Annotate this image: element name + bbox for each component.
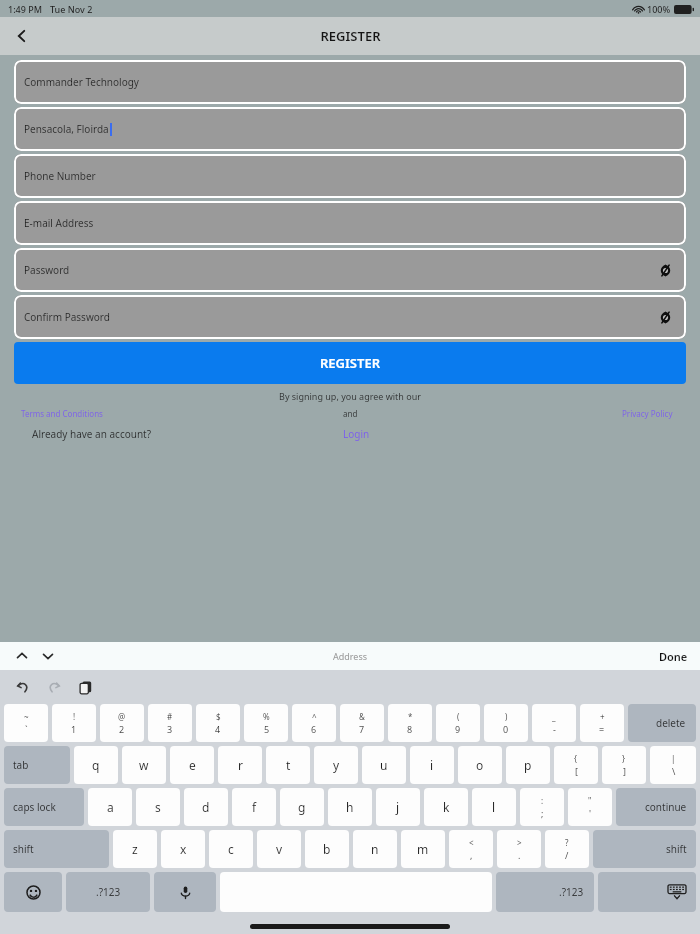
button[interactable]: Login [343, 427, 370, 441]
button[interactable]: p [506, 746, 550, 784]
button[interactable]: continue [616, 788, 696, 826]
button[interactable]: Terms and Conditions [21, 408, 103, 419]
button[interactable]: ^ [292, 704, 336, 742]
button[interactable]: Password [14, 248, 686, 292]
button[interactable]: Previous field [10, 644, 34, 668]
staticText: E-mail Address [24, 216, 94, 230]
button[interactable]: " [568, 788, 612, 826]
button[interactable]: > [497, 830, 541, 868]
button[interactable]: * [388, 704, 432, 742]
staticText: v [276, 841, 283, 857]
button[interactable]: t [266, 746, 310, 784]
button[interactable]: w [122, 746, 166, 784]
button[interactable]: o [458, 746, 502, 784]
staticText: / [565, 849, 569, 861]
button[interactable]: s [136, 788, 180, 826]
button[interactable]: Back [0, 17, 44, 55]
button[interactable]: Hide keyboard [598, 872, 696, 912]
button[interactable]: y [314, 746, 358, 784]
staticText: k [443, 799, 450, 815]
button[interactable]: ! [52, 704, 96, 742]
button[interactable]: _ [532, 704, 576, 742]
button[interactable]: ~ [4, 704, 48, 742]
staticText: @ [118, 711, 126, 722]
button[interactable]: Confirm Password [14, 295, 686, 339]
button[interactable]: shift [4, 830, 109, 868]
button[interactable]: Paste [72, 674, 98, 700]
button[interactable]: ) [484, 704, 528, 742]
button[interactable]: % [244, 704, 288, 742]
button[interactable]: Dictation [154, 872, 216, 912]
button[interactable]: : [520, 788, 564, 826]
staticText: " [588, 795, 592, 806]
button[interactable]: ( [436, 704, 480, 742]
button[interactable]: g [280, 788, 324, 826]
button[interactable]: { [554, 746, 598, 784]
button[interactable]: Redo [41, 674, 67, 700]
button[interactable]: + [580, 704, 624, 742]
button[interactable]: x [161, 830, 205, 868]
staticText: ] [623, 765, 626, 777]
button[interactable]: m [401, 830, 445, 868]
button[interactable]: i [410, 746, 454, 784]
button[interactable]: ? [545, 830, 589, 868]
button[interactable]: h [328, 788, 372, 826]
button[interactable]: Privacy Policy [622, 408, 673, 419]
button[interactable]: .?123 [496, 872, 594, 912]
button[interactable]: n [353, 830, 397, 868]
button[interactable]: tab [4, 746, 70, 784]
button[interactable]: shift [593, 830, 696, 868]
button[interactable]: v [257, 830, 301, 868]
button[interactable]: u [362, 746, 406, 784]
button[interactable]: | [650, 746, 696, 784]
button[interactable]: } [602, 746, 646, 784]
button[interactable]: < [449, 830, 493, 868]
button[interactable]: Toggle password visibility [652, 257, 678, 283]
staticText: Pensacola, Floirda [24, 122, 109, 136]
button[interactable]: z [113, 830, 157, 868]
button[interactable]: Pensacola, Floirda [14, 107, 686, 151]
button[interactable]: Next field [36, 644, 60, 668]
button[interactable]: c [209, 830, 253, 868]
button[interactable]: b [305, 830, 349, 868]
staticText: c [228, 841, 234, 857]
button[interactable]: q [74, 746, 118, 784]
button[interactable]: Done [659, 649, 688, 664]
button[interactable]: a [88, 788, 132, 826]
staticText: a [107, 799, 114, 815]
staticText: 3 [167, 723, 173, 735]
button[interactable]: d [184, 788, 228, 826]
button[interactable]: REGISTER [14, 342, 686, 384]
button[interactable]: # [148, 704, 192, 742]
button[interactable]: r [218, 746, 262, 784]
button[interactable]: l [472, 788, 516, 826]
button[interactable]: .?123 [66, 872, 150, 912]
button[interactable]: Commander Technology [14, 60, 686, 104]
staticText: ` [25, 723, 28, 735]
staticText: & [359, 711, 365, 722]
button[interactable]: $ [196, 704, 240, 742]
button[interactable]: e [170, 746, 214, 784]
button[interactable]: k [424, 788, 468, 826]
button[interactable]: caps lock [4, 788, 84, 826]
staticText: p [524, 757, 532, 773]
staticText: q [92, 757, 100, 773]
staticText: REGISTER [320, 27, 381, 45]
staticText: : [541, 795, 544, 806]
button[interactable]: Emoji [4, 872, 62, 912]
button[interactable]: & [340, 704, 384, 742]
button[interactable]: j [376, 788, 420, 826]
staticText: ) [505, 711, 508, 722]
button[interactable]: Phone Number [14, 154, 686, 198]
button[interactable]: Undo [10, 674, 36, 700]
button[interactable]: Toggle password visibility [652, 304, 678, 330]
staticText: g [298, 799, 306, 815]
button[interactable]: @ [100, 704, 144, 742]
button[interactable]: f [232, 788, 276, 826]
staticText: .?123 [559, 885, 584, 899]
staticText: > [517, 837, 522, 848]
button[interactable]: E-mail Address [14, 201, 686, 245]
button[interactable]: delete [628, 704, 696, 742]
staticText: e [189, 757, 196, 773]
